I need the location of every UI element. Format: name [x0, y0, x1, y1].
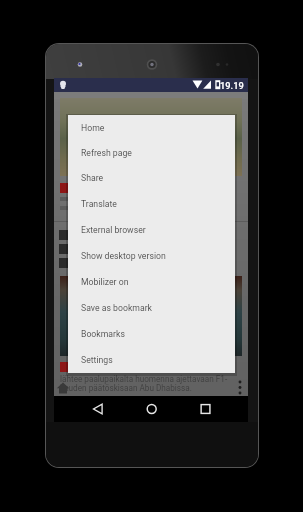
button[interactable]: More options	[235, 378, 245, 394]
button[interactable]: Home	[56, 381, 70, 395]
button[interactable]: Share	[68, 165, 235, 191]
button[interactable]: External browser	[68, 217, 235, 243]
staticText: Refresh page	[81, 148, 132, 158]
staticText: External browser	[81, 225, 146, 235]
button[interactable]: Refresh page	[68, 140, 235, 165]
staticText: kauden päätöskisaan Abu Dhabissa.	[60, 383, 192, 393]
staticText: Save as bookmark	[81, 303, 152, 313]
button[interactable]: Home	[118, 396, 183, 422]
staticText: Share	[81, 173, 104, 183]
staticText: Show desktop version	[81, 251, 166, 261]
button[interactable]: Settings	[68, 347, 235, 373]
staticText: 19.19	[220, 80, 244, 91]
staticText: Mobilizer on	[81, 277, 129, 287]
button[interactable]: Back	[54, 396, 118, 422]
button[interactable]: Home	[68, 115, 235, 140]
staticText: lähtee paalupaikalta huomenna ajettavaan…	[60, 374, 228, 384]
button[interactable]: Mobilizer on	[68, 269, 235, 295]
staticText: Bookmarks	[81, 329, 125, 339]
button[interactable]: Translate	[68, 191, 235, 217]
button[interactable]: Recent apps	[183, 396, 248, 422]
button[interactable]: Bookmarks	[68, 321, 235, 347]
staticText: Translate	[81, 199, 117, 209]
staticText: Home	[81, 123, 105, 133]
button[interactable]: Save as bookmark	[68, 295, 235, 321]
staticText: Settings	[81, 355, 113, 365]
button[interactable]: Show desktop version	[68, 243, 235, 269]
